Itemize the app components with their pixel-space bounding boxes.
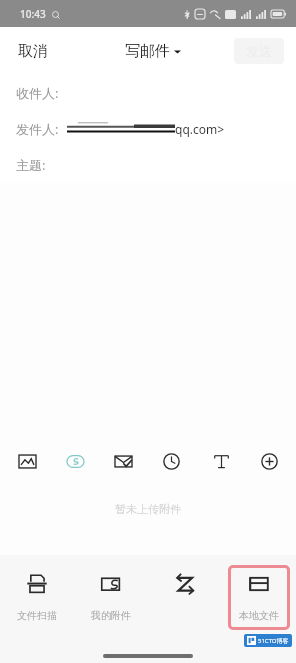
- staticText: qq.com>: [175, 121, 225, 137]
- button[interactable]: 取消: [0, 32, 66, 71]
- button[interactable]: 发件人:: [0, 111, 296, 147]
- staticText: 本地文件: [239, 609, 279, 622]
- button[interactable]: Local files: [228, 565, 290, 630]
- staticText: 发件人:: [16, 120, 59, 138]
- staticText: 主题:: [16, 156, 46, 174]
- button[interactable]: Smart tool: [62, 448, 88, 474]
- button[interactable]: 写邮件: [119, 34, 187, 69]
- staticText: 取消: [18, 42, 48, 61]
- button[interactable]: My attachments: [80, 565, 142, 630]
- staticText: 写邮件: [125, 42, 170, 61]
- staticText: 我的附件: [91, 609, 131, 622]
- button[interactable]: More: [256, 448, 282, 474]
- button[interactable]: 主题:: [0, 147, 296, 183]
- staticText: 暂未上传附件: [115, 502, 181, 516]
- button[interactable]: Insert image: [14, 448, 40, 474]
- staticText: 10:43: [20, 7, 46, 21]
- staticText: 51CTO博客: [258, 637, 289, 645]
- button[interactable]: Document scan: [6, 565, 68, 630]
- button[interactable]: 收件人:: [0, 75, 296, 111]
- button[interactable]: Mail receipt: [110, 448, 136, 474]
- staticText: 收件人:: [16, 84, 59, 102]
- button[interactable]: Text format: [208, 448, 234, 474]
- button[interactable]: Schedule send: [158, 448, 184, 474]
- staticText: 文件扫描: [17, 609, 57, 622]
- button[interactable]: Transfer: [154, 565, 216, 629]
